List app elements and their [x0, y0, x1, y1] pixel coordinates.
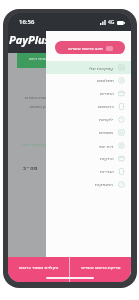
staticText: סריקת כרטיס אשראי [81, 264, 121, 270]
button[interactable]: הגדרות [46, 165, 131, 178]
staticText: עסקאות שלי [89, 65, 114, 71]
staticText: הגדרות [100, 169, 114, 174]
button[interactable]: הודעות [46, 152, 131, 165]
staticText: סה״כ [23, 165, 38, 171]
button[interactable]: דוח יומי [46, 139, 131, 152]
staticText: החזרים [100, 91, 114, 96]
staticText: כרטיסים [98, 104, 114, 109]
staticText: 16:56 [19, 18, 35, 26]
staticText: 4G [108, 19, 115, 26]
button[interactable]: חיוב כרטיס אשראי [55, 41, 125, 54]
button[interactable]: תשלומים [46, 74, 131, 87]
staticText: הקלדת מספר כרטיס [19, 264, 59, 270]
staticText: העסקאות שלי [22, 141, 49, 147]
button[interactable]: לקוחות [46, 113, 131, 126]
button[interactable]: עסקאות שלי [46, 61, 131, 74]
button[interactable]: סריקת כרטיס אשראי [70, 257, 131, 282]
staticText: PayPlus [9, 32, 50, 47]
button[interactable]: החזרים [46, 87, 131, 100]
staticText: תשלומים [97, 78, 114, 83]
staticText: דוח יומי [99, 143, 114, 149]
staticText: אין נתונים [30, 103, 49, 109]
staticText: לקוחות [99, 117, 114, 122]
button[interactable]: כרטיסים [46, 100, 131, 113]
staticText: התנתקות [95, 182, 114, 187]
button[interactable]: הקלדת מספר כרטיס [8, 257, 69, 282]
button[interactable]: מסופים [46, 126, 131, 139]
staticText: הכנסות היום [29, 55, 53, 61]
staticText: הכנסות החודש [25, 94, 54, 100]
staticText: הודעות [100, 156, 114, 161]
button[interactable]: התנתקות [46, 178, 131, 191]
staticText: מסופים [99, 130, 114, 135]
staticText: חיוב כרטיס אשראי [68, 45, 103, 51]
